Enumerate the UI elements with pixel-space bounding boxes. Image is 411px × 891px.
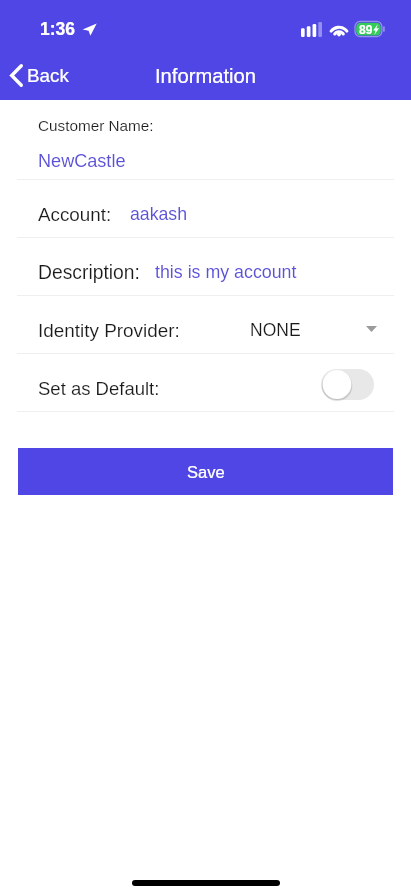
button[interactable]: Customer Name: (0, 100, 411, 179)
staticText: 1:36 (40, 19, 76, 39)
button[interactable]: Description: (0, 238, 411, 295)
other: Cellular signal (301, 22, 322, 37)
staticText: aakash (130, 204, 188, 224)
button[interactable]: Save (18, 448, 393, 495)
staticText: Information (155, 65, 256, 88)
staticText: Description: (38, 262, 140, 284)
button[interactable]: Account: (0, 180, 411, 237)
staticText: Save (187, 463, 225, 481)
button[interactable]: Identity Provider: (0, 296, 411, 353)
staticText: Back (27, 65, 69, 86)
staticText: Customer Name: (38, 117, 154, 134)
staticText: this is my account (155, 262, 297, 282)
staticText: Account: (38, 204, 112, 225)
button[interactable]: Back (0, 67, 79, 90)
staticText: 89 (359, 23, 373, 36)
other: Open identity provider list (366, 326, 377, 332)
staticText: NONE (250, 320, 301, 340)
other: Wi-Fi (329, 23, 349, 36)
button[interactable]: Set as default toggle (321, 369, 374, 402)
staticText: NewCastle (38, 151, 126, 171)
staticText: Set as Default: (38, 378, 160, 399)
staticText: Identity Provider: (38, 320, 180, 341)
